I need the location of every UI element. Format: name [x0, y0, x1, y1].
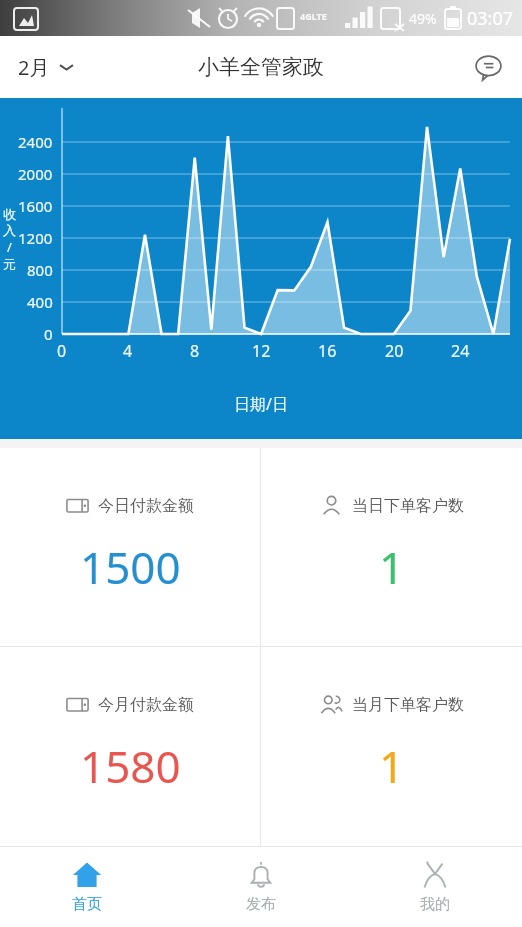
staticText: 首页 — [72, 895, 102, 914]
staticText: 49% — [409, 9, 437, 28]
staticText: 当月下单客户数 — [352, 695, 464, 715]
button[interactable]: 2月 — [12, 48, 80, 87]
staticText: 8 — [190, 340, 200, 362]
staticText: 小羊全管家政 — [198, 54, 324, 80]
button[interactable]: 今日付款金额 — [0, 448, 260, 646]
staticText: 当日下单客户数 — [352, 496, 464, 516]
staticText: 2000 — [18, 164, 53, 184]
staticText: 24 — [451, 340, 470, 362]
staticText: 16 — [318, 340, 337, 362]
button[interactable]: 当月下单客户数 — [261, 647, 522, 846]
button[interactable]: 发布 — [174, 847, 348, 927]
staticText: 我的 — [420, 895, 450, 914]
staticText: 2月 — [18, 54, 50, 81]
staticText: 1 — [379, 736, 405, 796]
button[interactable]: 今月付款金额 — [0, 647, 260, 846]
staticText: 今日付款金额 — [98, 496, 194, 516]
staticText: 1580 — [80, 736, 181, 796]
button[interactable]: 我的 — [348, 847, 522, 927]
staticText: 日期/日 — [234, 393, 288, 415]
button[interactable]: Messages — [466, 45, 510, 89]
staticText: 03:07 — [467, 6, 514, 31]
staticText: 4 — [123, 340, 133, 362]
staticText: 20 — [385, 340, 404, 362]
staticText: 800 — [27, 260, 53, 280]
staticText: 入 — [3, 222, 16, 238]
staticText: 1 — [379, 537, 405, 597]
staticText: 1200 — [18, 228, 53, 248]
staticText: 发布 — [246, 895, 276, 914]
staticText: 元 — [3, 256, 16, 272]
staticText: 400 — [27, 292, 53, 312]
staticText: 4GLTE — [300, 10, 327, 22]
staticText: 0 — [44, 324, 53, 344]
staticText: 1600 — [18, 196, 53, 216]
staticText: 0 — [57, 340, 67, 362]
staticText: 收 — [3, 206, 16, 222]
staticText: 1500 — [80, 537, 181, 597]
staticText: 12 — [252, 340, 271, 362]
staticText: 今月付款金额 — [98, 695, 194, 715]
staticText: / — [7, 238, 12, 256]
button[interactable]: 首页 — [0, 847, 174, 927]
button[interactable]: 当日下单客户数 — [261, 448, 522, 646]
staticText: 2400 — [18, 132, 53, 152]
